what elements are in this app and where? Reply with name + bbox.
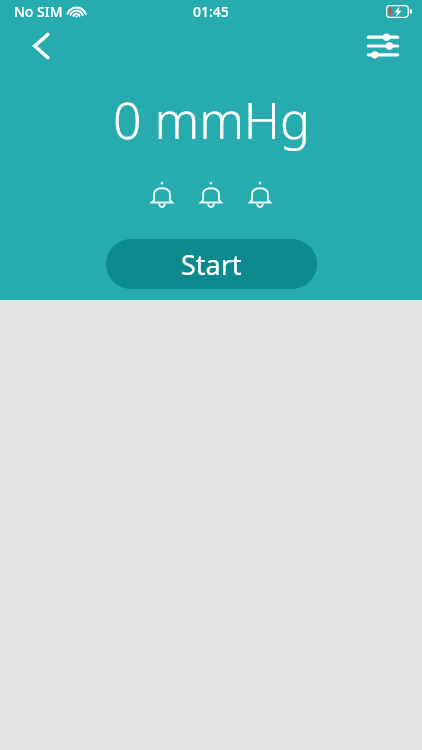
button[interactable]: Alarm 1 bbox=[150, 181, 174, 210]
button[interactable]: Alarm 3 bbox=[248, 181, 272, 210]
staticText: No SIM bbox=[14, 2, 63, 21]
staticText: Start bbox=[181, 246, 242, 283]
button[interactable]: Alarm 2 bbox=[199, 181, 223, 210]
button[interactable]: Start bbox=[106, 239, 317, 289]
staticText: 01:45 bbox=[193, 2, 229, 21]
button[interactable]: Back bbox=[24, 28, 60, 64]
button[interactable]: Settings bbox=[366, 29, 400, 63]
staticText: 0 mmHg bbox=[113, 86, 310, 154]
